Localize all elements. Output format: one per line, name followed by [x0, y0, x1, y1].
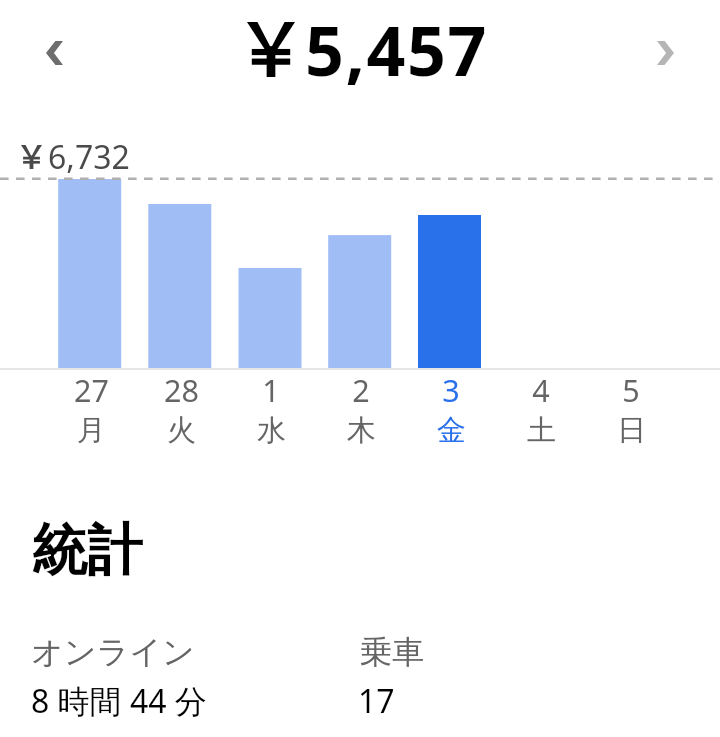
staticText: 2	[352, 369, 370, 411]
staticText: 1	[262, 369, 280, 411]
button[interactable]: 27	[46, 369, 136, 447]
button[interactable]: 28	[136, 369, 226, 447]
staticText: 月	[77, 412, 106, 448]
staticText: 乗車	[360, 632, 424, 672]
staticText: 27	[74, 369, 109, 411]
staticText: 金	[437, 412, 466, 448]
staticText: 3	[442, 369, 460, 411]
staticText: 日	[617, 412, 646, 448]
button[interactable]: 5	[586, 369, 676, 447]
staticText: 火	[167, 412, 196, 448]
button[interactable]: 4	[496, 369, 586, 447]
staticText: 17	[358, 679, 395, 723]
staticText: 5	[622, 369, 640, 411]
staticText: 4	[532, 369, 550, 411]
staticText: 水	[257, 412, 286, 448]
staticText: オンライン	[31, 632, 195, 672]
staticText: 木	[347, 412, 376, 448]
button[interactable]: 2	[316, 369, 406, 447]
button[interactable]: 1	[226, 369, 316, 447]
staticText: 統計	[32, 516, 142, 585]
staticText: 土	[527, 412, 556, 448]
staticText: 8 時間 44 分	[31, 679, 207, 723]
staticText: 5,457	[305, 3, 488, 96]
staticText: 28	[164, 369, 199, 411]
staticText: 6,732	[48, 135, 130, 179]
button[interactable]: Next day	[637, 25, 693, 81]
button[interactable]: 3	[406, 369, 496, 447]
button[interactable]: Previous day	[26, 25, 82, 81]
